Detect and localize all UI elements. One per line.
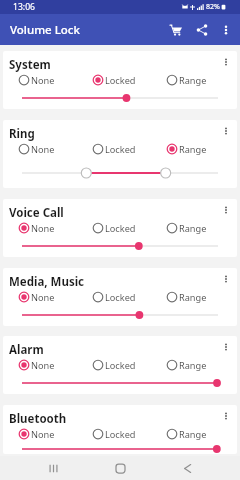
- staticText: Locked: [105, 359, 136, 372]
- button[interactable]: None: [18, 71, 92, 89]
- button[interactable]: Range: [166, 219, 237, 237]
- button[interactable]: Recent apps: [33, 456, 73, 480]
- button[interactable]: Range: [166, 71, 237, 89]
- button[interactable]: Back: [167, 456, 207, 480]
- button[interactable]: Range: [166, 425, 237, 443]
- button[interactable]: System: [3, 51, 237, 109]
- button[interactable]: Range: [166, 288, 237, 306]
- staticText: Range: [179, 428, 207, 441]
- button[interactable]: Home: [100, 456, 140, 480]
- button[interactable]: None: [18, 356, 92, 374]
- staticText: None: [31, 143, 55, 156]
- staticText: Range: [179, 74, 207, 87]
- staticText: Locked: [105, 143, 136, 156]
- button[interactable]: More options: [217, 201, 235, 219]
- staticText: Ring: [9, 126, 35, 142]
- staticText: None: [31, 428, 55, 441]
- button[interactable]: None: [18, 140, 92, 158]
- staticText: Locked: [105, 291, 136, 304]
- staticText: Media, Music: [9, 274, 85, 290]
- button[interactable]: Locked: [92, 288, 166, 306]
- staticText: None: [31, 359, 55, 372]
- staticText: Volume Lock: [10, 22, 80, 38]
- button[interactable]: More options: [217, 122, 235, 140]
- button[interactable]: More options: [217, 53, 235, 71]
- button[interactable]: Range: [166, 356, 237, 374]
- button[interactable]: More options: [215, 19, 237, 41]
- staticText: None: [31, 74, 55, 87]
- staticText: 13:06: [13, 1, 35, 13]
- button[interactable]: Locked: [92, 356, 166, 374]
- staticText: Alarm: [9, 342, 44, 358]
- staticText: Range: [179, 222, 207, 235]
- button[interactable]: Locked: [92, 140, 166, 158]
- staticText: Locked: [105, 74, 136, 87]
- staticText: 82%: [206, 2, 220, 12]
- button[interactable]: Share: [189, 17, 215, 43]
- staticText: Range: [179, 143, 207, 156]
- button[interactable]: Bluetooth: [3, 405, 237, 454]
- staticText: Range: [179, 359, 207, 372]
- button[interactable]: Locked: [92, 219, 166, 237]
- staticText: None: [31, 291, 55, 304]
- staticText: Voice Call: [9, 205, 64, 221]
- button[interactable]: Alarm: [3, 336, 237, 394]
- staticText: Range: [179, 291, 207, 304]
- button[interactable]: Shop: [163, 17, 189, 43]
- button[interactable]: Voice Call: [3, 199, 237, 257]
- button[interactable]: Ring: [3, 120, 237, 188]
- button[interactable]: Media, Music: [3, 268, 237, 326]
- staticText: System: [9, 57, 51, 73]
- button[interactable]: Range: [166, 140, 237, 158]
- staticText: Locked: [105, 428, 136, 441]
- button[interactable]: More options: [217, 270, 235, 288]
- button[interactable]: Locked: [92, 425, 166, 443]
- button[interactable]: None: [18, 288, 92, 306]
- button[interactable]: Locked: [92, 71, 166, 89]
- staticText: None: [31, 222, 55, 235]
- staticText: Bluetooth: [9, 411, 67, 427]
- button[interactable]: None: [18, 219, 92, 237]
- button[interactable]: More options: [217, 407, 235, 425]
- staticText: Locked: [105, 222, 136, 235]
- button[interactable]: None: [18, 425, 92, 443]
- button[interactable]: More options: [217, 338, 235, 356]
